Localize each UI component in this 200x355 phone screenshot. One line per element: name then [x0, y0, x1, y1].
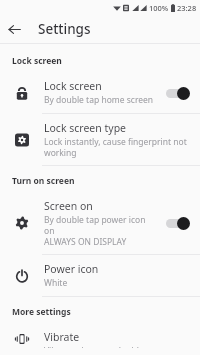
staticText: Power icon: [44, 262, 99, 276]
staticText: Lock screen type: [44, 121, 127, 135]
button[interactable]: Back: [0, 15, 28, 43]
button[interactable]: Toggle Screen on: [164, 215, 190, 231]
staticText: White: [44, 277, 68, 289]
staticText: By double tap home screen: [44, 94, 154, 106]
button[interactable]: Lock screen type: [0, 114, 200, 165]
staticText: Screen on: [44, 199, 93, 213]
staticText: By double tap power icon on ALWAYS ON DI…: [44, 214, 158, 247]
staticText: Vibrate: [44, 330, 80, 344]
button[interactable]: Toggle Lock screen: [164, 85, 190, 101]
button[interactable]: Vibrate: [0, 323, 200, 355]
staticText: Turn on screen: [12, 175, 75, 187]
staticText: Vibrate when you double tap: [44, 345, 159, 348]
staticText: 23:28: [177, 3, 197, 13]
button[interactable]: Screen on: [0, 192, 200, 254]
button[interactable]: Power icon: [0, 255, 200, 296]
staticText: 100%: [149, 3, 169, 13]
staticText: Lock screen: [44, 79, 102, 93]
staticText: Settings: [38, 20, 91, 38]
staticText: Lock instantly, cause fingerprint not wo…: [44, 136, 187, 158]
staticText: More settings: [12, 306, 71, 318]
button[interactable]: Lock screen: [0, 72, 200, 113]
staticText: Lock screen: [12, 55, 62, 67]
